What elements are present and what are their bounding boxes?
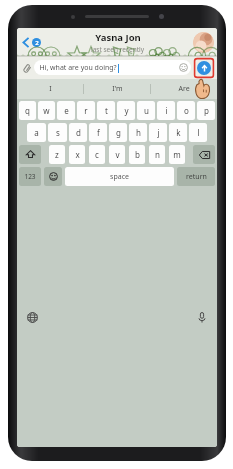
staticText: r — [84, 105, 88, 116]
button[interactable]: o — [177, 101, 195, 120]
staticText: u — [144, 105, 149, 116]
button[interactable]: z — [49, 145, 65, 164]
staticText: s — [56, 127, 60, 138]
button[interactable] — [193, 145, 215, 164]
button[interactable]: l — [189, 123, 207, 142]
staticText: w — [43, 105, 50, 116]
staticText: d — [76, 127, 81, 138]
button[interactable]: m — [169, 145, 185, 164]
button[interactable]: t — [97, 101, 115, 120]
button[interactable]: u — [137, 101, 155, 120]
button[interactable]: h — [129, 123, 147, 142]
button[interactable]: j — [149, 123, 167, 142]
staticText: m — [173, 149, 181, 160]
button[interactable]: f — [89, 123, 107, 142]
button[interactable]: p — [197, 101, 215, 120]
button[interactable]: 123 — [19, 167, 41, 186]
button[interactable]: c — [89, 145, 105, 164]
staticText: Yasna Jon — [95, 31, 141, 44]
staticText: e — [64, 105, 69, 116]
button[interactable]: d — [69, 123, 87, 142]
staticText: z — [55, 149, 59, 160]
button[interactable]: k — [169, 123, 187, 142]
staticText: f — [97, 127, 100, 138]
staticText: Are — [178, 84, 190, 94]
button[interactable]: v — [109, 145, 125, 164]
staticText: p — [204, 105, 209, 116]
staticText: Hi, what are you doing? — [39, 63, 117, 73]
staticText: k — [176, 127, 181, 138]
staticText: g — [116, 127, 121, 138]
staticText: x — [75, 149, 80, 160]
staticText: o — [184, 105, 189, 116]
staticText: i — [165, 105, 168, 116]
button[interactable]: space — [65, 167, 174, 186]
staticText: c — [95, 149, 99, 160]
button[interactable]: b — [129, 145, 145, 164]
staticText: q — [25, 105, 30, 116]
staticText: b — [135, 149, 140, 160]
button[interactable]: w — [38, 101, 55, 120]
button[interactable]: y — [117, 101, 135, 120]
staticText: v — [115, 149, 120, 160]
button[interactable]: Change keyboard — [25, 310, 39, 324]
staticText: I'm — [112, 84, 123, 94]
button[interactable]: n — [149, 145, 165, 164]
button[interactable]: Attach — [20, 61, 34, 75]
button[interactable]: return — [177, 167, 215, 186]
button[interactable]: I'm — [84, 79, 150, 99]
button[interactable]: Send — [194, 58, 214, 78]
button[interactable]: s — [48, 123, 67, 142]
button[interactable] — [44, 167, 62, 186]
staticText: j — [157, 127, 160, 138]
button[interactable]: r — [77, 101, 95, 120]
staticText: 123 — [24, 172, 36, 181]
staticText: space — [110, 172, 129, 182]
button[interactable]: g — [109, 123, 127, 142]
button[interactable]: Back, 2 unread — [20, 34, 43, 51]
button[interactable]: a — [27, 123, 46, 142]
staticText: n — [155, 149, 160, 160]
button[interactable]: x — [69, 145, 85, 164]
staticText: last seen recently — [91, 45, 144, 54]
button[interactable] — [19, 145, 41, 164]
staticText: t — [105, 105, 108, 116]
button[interactable]: Hi, what are you doing? — [34, 60, 191, 75]
button[interactable]: I — [17, 79, 83, 99]
staticText: a — [34, 127, 39, 138]
staticText: y — [124, 105, 129, 116]
staticText: l — [197, 127, 200, 138]
staticText: 2 — [35, 39, 39, 47]
staticText: return — [186, 172, 207, 182]
button[interactable]: i — [157, 101, 175, 120]
staticText: h — [136, 127, 141, 138]
button[interactable]: Profile photo — [193, 32, 214, 53]
button[interactable]: q — [19, 101, 36, 120]
staticText: I — [49, 84, 52, 94]
button[interactable]: Are — [151, 79, 217, 99]
button[interactable]: e — [57, 101, 75, 120]
button[interactable]: Voice input — [195, 310, 209, 324]
